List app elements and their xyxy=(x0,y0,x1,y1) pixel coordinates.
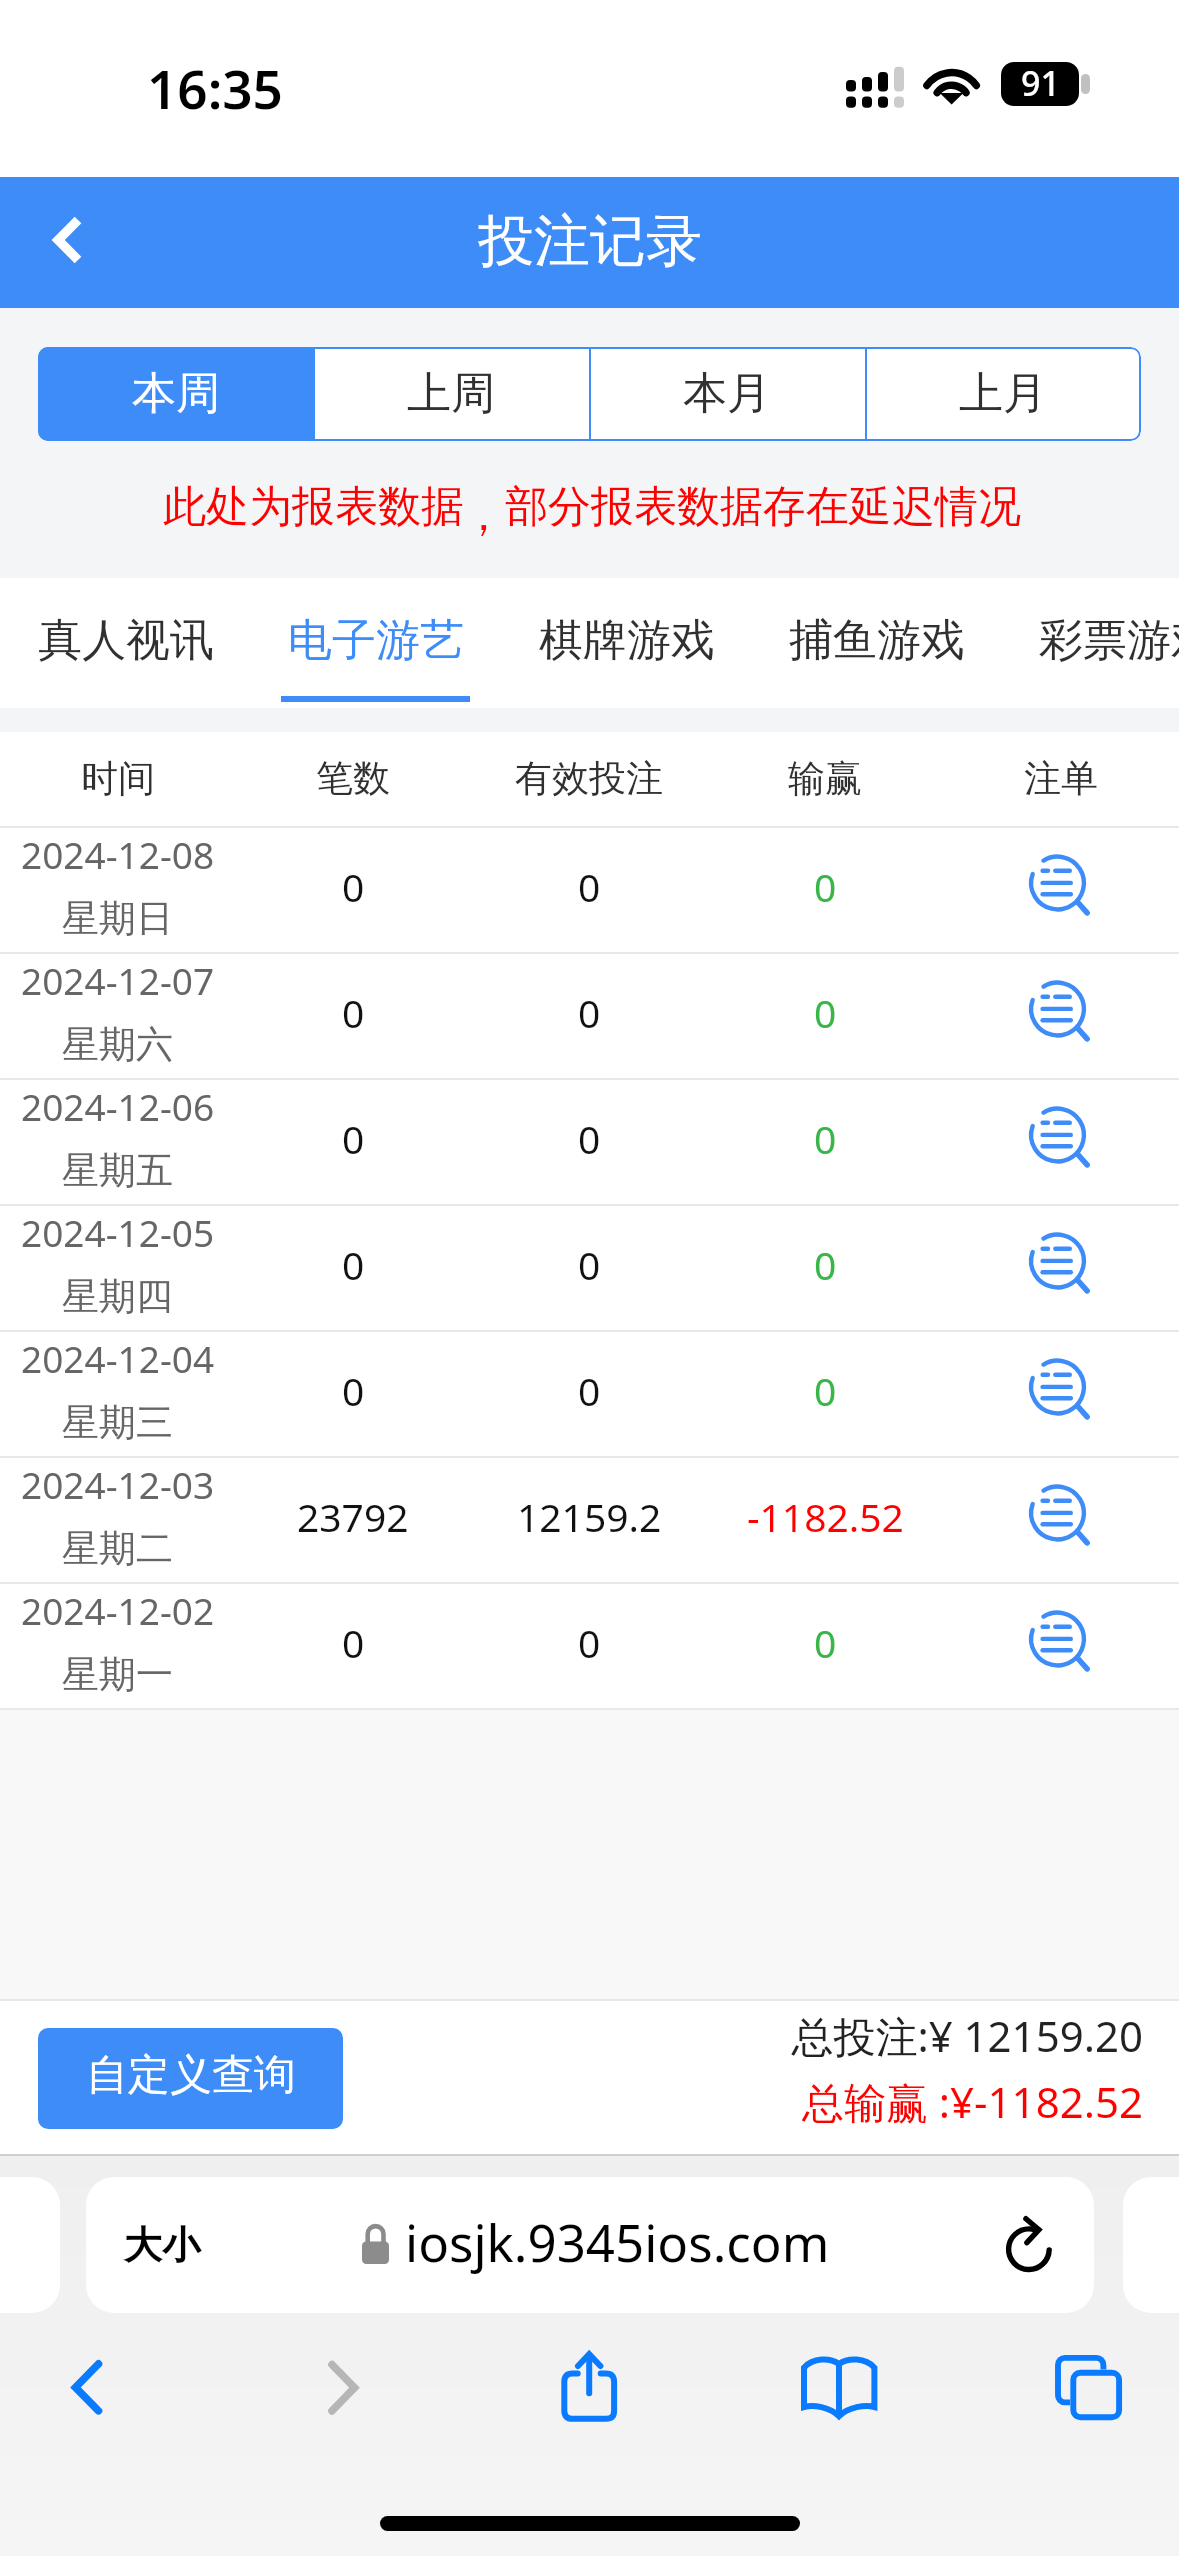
staticText: 星期五 xyxy=(62,1147,173,1194)
button[interactable]: 2024-12-02 xyxy=(0,1584,1179,1710)
button[interactable]: 查看注单 xyxy=(943,1080,1179,1206)
staticText: 0 xyxy=(814,1238,837,1291)
button[interactable]: 2024-12-07 xyxy=(0,954,1179,1080)
staticText: 输赢 xyxy=(788,755,862,802)
staticText: 0 xyxy=(342,1364,365,1417)
staticText: 12159.2 xyxy=(517,1490,662,1543)
staticText: 本周 xyxy=(132,366,220,421)
button[interactable]: 上月 xyxy=(865,347,1141,441)
staticText: 0 xyxy=(814,860,837,913)
button[interactable]: 本周 xyxy=(38,347,313,441)
staticText: ， xyxy=(462,489,505,543)
button[interactable]: 本月 xyxy=(589,347,865,441)
staticText: 棋牌游戏 xyxy=(539,613,715,668)
staticText: 星期六 xyxy=(62,1021,173,1068)
button[interactable]: 前进 xyxy=(277,2326,401,2450)
staticText: 0 xyxy=(342,1616,365,1669)
staticText: 总投注:¥ 12159.20 xyxy=(0,2007,1143,2064)
staticText: 彩票游戏 xyxy=(1039,613,1179,668)
staticText: 0 xyxy=(578,1112,601,1165)
staticText: 时间 xyxy=(81,755,155,802)
button[interactable]: 查看注单 xyxy=(943,828,1179,954)
button[interactable]: 查看注单 xyxy=(943,1584,1179,1710)
button[interactable]: 真人视讯 xyxy=(0,578,251,708)
staticText: 0 xyxy=(578,1616,601,1669)
staticText: 星期四 xyxy=(62,1273,173,1320)
button[interactable]: 电子游艺 xyxy=(250,578,501,708)
staticText: 0 xyxy=(342,1238,365,1291)
staticText: 笔数 xyxy=(316,755,390,802)
staticText: 电子游艺 xyxy=(288,613,464,668)
staticText: 自定义查询 xyxy=(86,2049,296,2102)
staticText: 16:35 xyxy=(147,52,283,124)
staticText: 0 xyxy=(814,1112,837,1165)
button[interactable]: 2024-12-06 xyxy=(0,1080,1179,1206)
staticText: 0 xyxy=(814,1616,837,1669)
button[interactable]: 2024-12-03 xyxy=(0,1458,1179,1584)
staticText: 2024-12-05 xyxy=(21,1207,215,1257)
button[interactable]: 2024-12-04 xyxy=(0,1332,1179,1458)
staticText: 0 xyxy=(578,986,601,1039)
staticText: 2024-12-08 xyxy=(21,829,215,879)
staticText: 0 xyxy=(578,1364,601,1417)
staticText: 0 xyxy=(342,860,365,913)
staticText: 上周 xyxy=(407,366,495,421)
button[interactable]: 彩票游戏 xyxy=(1001,578,1179,708)
staticText: 真人视讯 xyxy=(38,613,214,668)
button[interactable]: 查看注单 xyxy=(943,1332,1179,1458)
button[interactable]: 后退 xyxy=(25,2326,149,2450)
staticText: 投注记录 xyxy=(478,206,702,277)
staticText: 有效投注 xyxy=(515,755,663,802)
staticText: 2024-12-03 xyxy=(21,1459,215,1509)
staticText: 2024-12-02 xyxy=(21,1585,215,1635)
button[interactable]: 标签页 xyxy=(1026,2326,1150,2450)
staticText: 星期二 xyxy=(62,1525,173,1572)
button[interactable]: 书签 xyxy=(777,2326,901,2450)
staticText: 23792 xyxy=(297,1490,409,1543)
button[interactable]: 2024-12-08 xyxy=(0,828,1179,954)
button[interactable]: 返回 xyxy=(0,177,132,308)
button[interactable]: 大小 xyxy=(86,2177,1094,2313)
staticText: 2024-12-06 xyxy=(21,1081,215,1131)
staticText: 大小 xyxy=(124,2221,200,2269)
staticText: 本月 xyxy=(683,366,771,421)
staticText: 注单 xyxy=(1024,755,1098,802)
button[interactable]: 查看注单 xyxy=(943,1458,1179,1584)
staticText: 星期日 xyxy=(62,895,173,942)
staticText: 0 xyxy=(342,1112,365,1165)
staticText: 总输赢 :¥-1182.52 xyxy=(0,2073,1143,2130)
staticText: 0 xyxy=(814,986,837,1039)
staticText: 2024-12-07 xyxy=(21,955,215,1005)
staticText: 星期三 xyxy=(62,1399,173,1446)
staticText: 2024-12-04 xyxy=(21,1333,215,1383)
staticText: 0 xyxy=(814,1364,837,1417)
button[interactable]: 棋牌游戏 xyxy=(501,578,752,708)
staticText: 上月 xyxy=(959,366,1047,421)
staticText: 91 xyxy=(1021,62,1060,104)
staticText: -1182.52 xyxy=(747,1490,904,1543)
staticText: 0 xyxy=(578,860,601,913)
button[interactable]: 查看注单 xyxy=(943,954,1179,1080)
staticText: 部分报表数据存在延迟情况 xyxy=(505,480,1021,534)
staticText: 0 xyxy=(342,986,365,1039)
staticText: 0 xyxy=(578,1238,601,1291)
button[interactable]: 2024-12-05 xyxy=(0,1206,1179,1332)
button[interactable]: 自定义查询 xyxy=(38,2028,343,2129)
button[interactable]: 分享 xyxy=(527,2326,651,2450)
staticText: 星期一 xyxy=(62,1651,173,1698)
staticText: iosjk.9345ios.com xyxy=(405,2207,830,2276)
button[interactable]: 捕鱼游戏 xyxy=(751,578,1002,708)
button[interactable]: 查看注单 xyxy=(943,1206,1179,1332)
staticText: 此处为报表数据 xyxy=(163,480,464,534)
button[interactable]: 上周 xyxy=(313,347,589,441)
staticText: 捕鱼游戏 xyxy=(789,613,965,668)
